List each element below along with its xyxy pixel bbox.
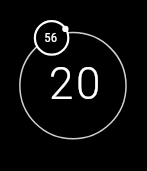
button[interactable]: Circular timer slider bbox=[0, 0, 147, 171]
